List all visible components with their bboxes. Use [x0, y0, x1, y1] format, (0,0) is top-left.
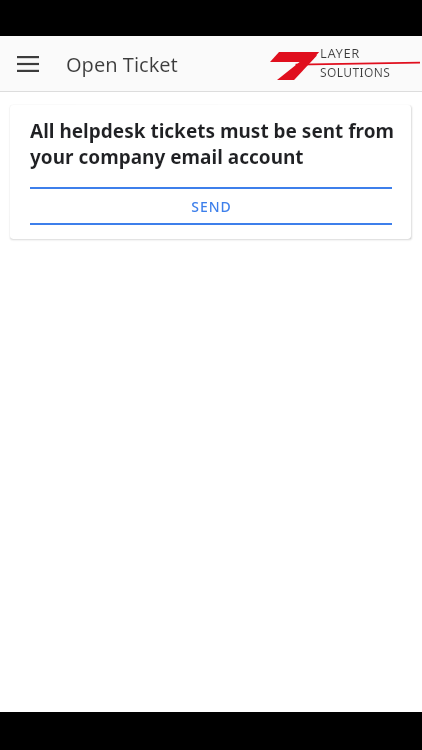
button[interactable]: SEND [30, 187, 392, 225]
staticText: All helpdesk tickets must be sent from y… [30, 118, 399, 170]
button[interactable]: Open navigation menu [8, 44, 48, 84]
button[interactable]: Layer Solutions Inc. logo [268, 44, 420, 84]
staticText: LAYER [320, 44, 361, 62]
staticText: SEND [191, 197, 232, 216]
staticText: Open Ticket [66, 51, 178, 78]
staticText: SOLUTIONS INC. [320, 64, 420, 84]
